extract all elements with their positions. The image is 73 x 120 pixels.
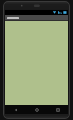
button[interactable]: Back [5,105,26,114]
button[interactable]: Home [26,105,47,114]
button[interactable]: Recent apps [47,105,68,114]
